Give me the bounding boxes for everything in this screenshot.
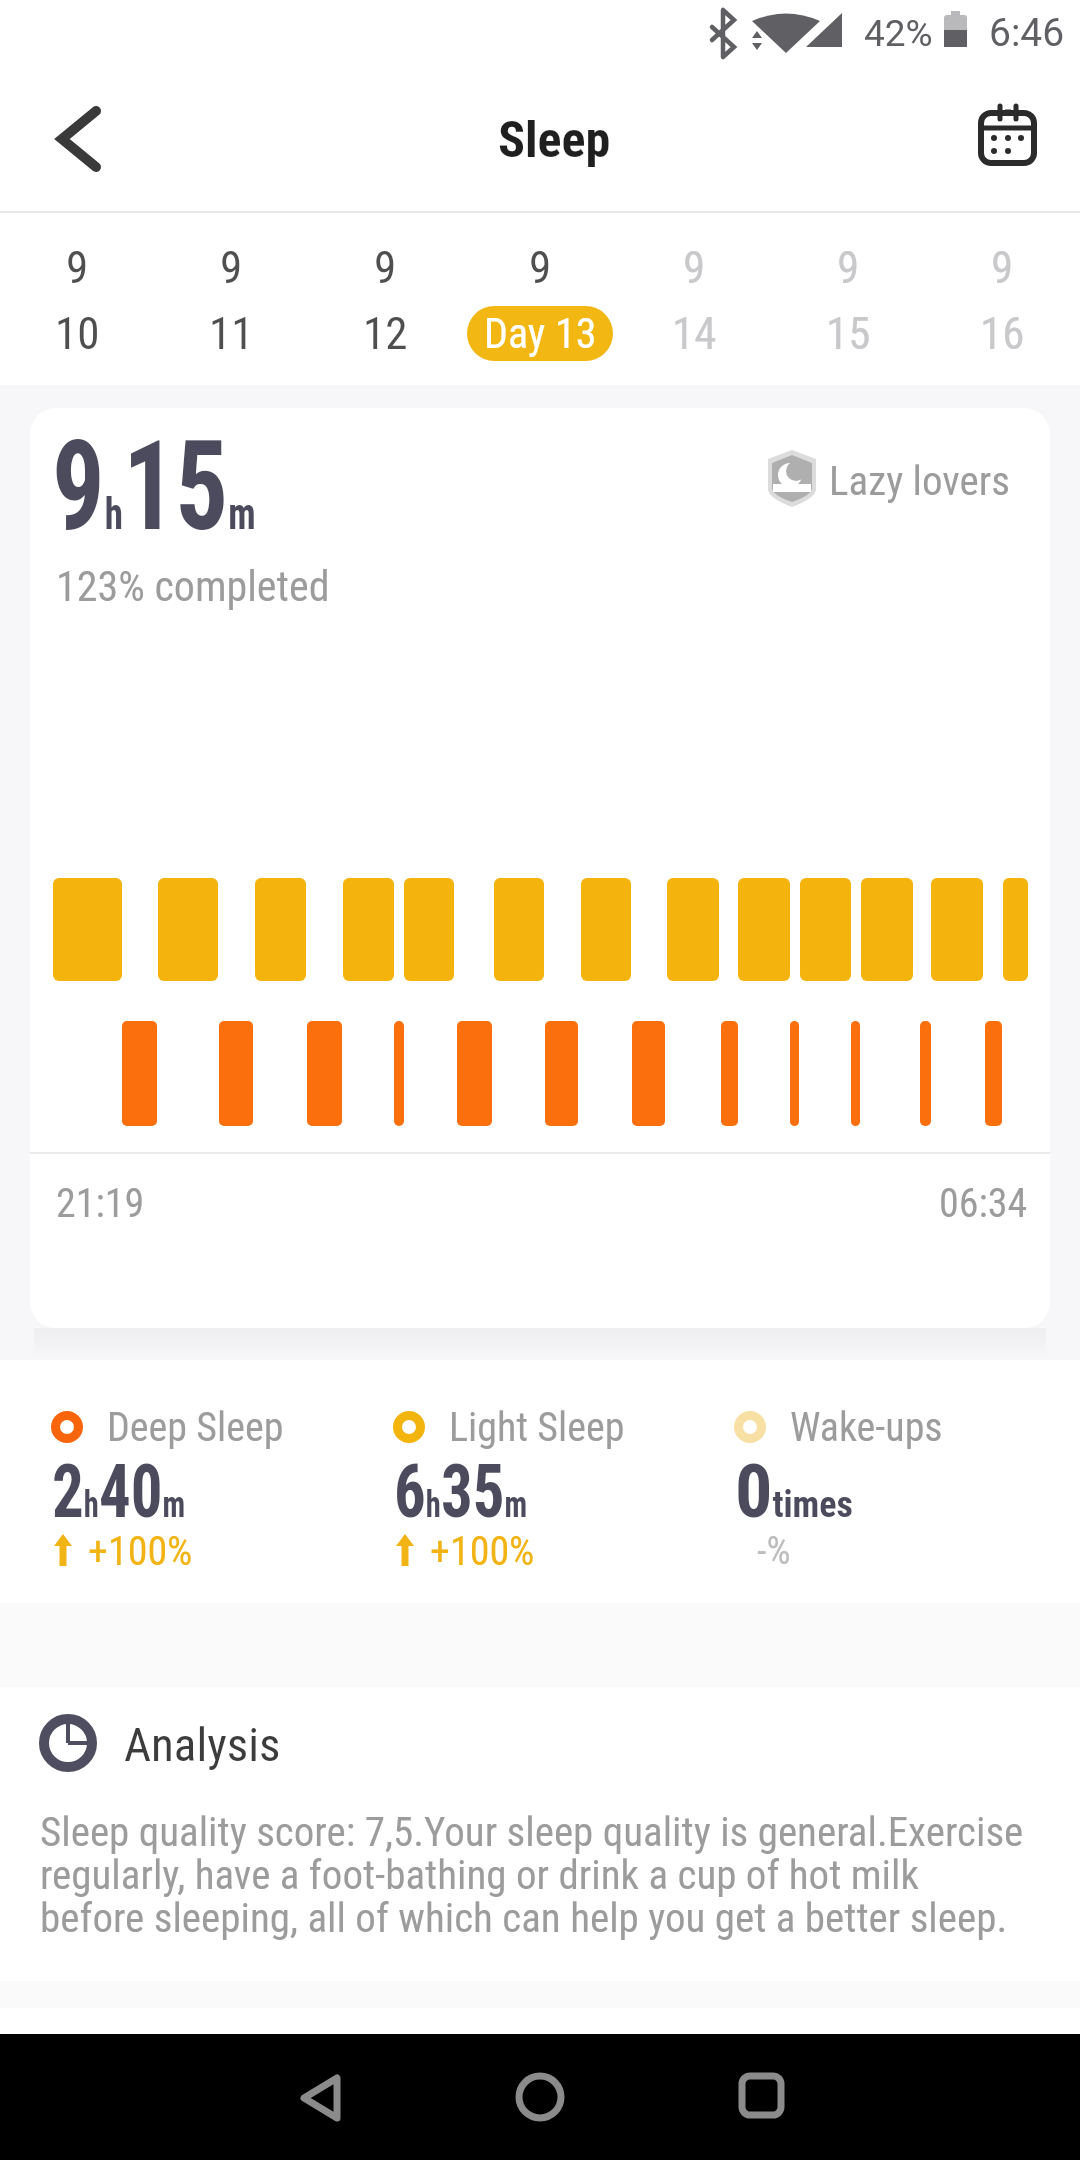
staticText: 16 [980,307,1025,360]
staticText: 10 [55,307,100,360]
staticText: 9h15m [52,414,256,559]
staticText: Deep Sleep [107,1404,284,1451]
staticText: 9 [529,241,552,294]
staticText: 6h35m [394,1448,527,1535]
button[interactable] [480,2040,600,2155]
staticText: 9 [683,241,706,294]
staticText: 9 [66,241,89,294]
button[interactable] [771,216,925,381]
staticText: +100% [430,1528,535,1575]
button[interactable] [154,216,308,381]
staticText: 9 [837,241,860,294]
button[interactable] [30,95,130,190]
staticText: +100% [88,1528,193,1575]
staticText: 9 [991,241,1014,294]
button[interactable] [700,2040,820,2155]
button[interactable] [960,90,1060,185]
button[interactable] [260,2040,380,2155]
staticText: 14 [672,307,717,360]
staticText: Day 13 [484,309,597,358]
staticText: 9 [374,241,397,294]
staticText: 2h40m [52,1448,185,1535]
staticText: 123% completed [56,562,330,611]
staticText: 6:46 [989,10,1065,56]
staticText: 06:34 [939,1180,1028,1227]
button[interactable] [308,216,462,381]
staticText: Sleep quality score: 7,5.Your sleep qual… [40,1808,1024,1942]
button[interactable] [0,216,154,381]
staticText: 11 [209,307,254,360]
staticText: 42% [864,12,933,55]
button[interactable] [617,216,771,381]
button[interactable] [463,216,617,381]
staticText: Analysis [124,1717,281,1772]
staticText: Sleep [498,111,611,170]
staticText: Wake-ups [790,1404,943,1451]
button[interactable] [925,216,1079,381]
staticText: Lazy lovers [829,457,1010,505]
staticText: 9 [220,241,243,294]
button[interactable]: Day 13 [467,306,613,361]
staticText: Light Sleep [449,1404,625,1451]
staticText: 21:19 [56,1180,145,1227]
staticText: -% [757,1529,791,1574]
staticText: 0times [735,1448,853,1535]
staticText: 15 [826,307,871,360]
staticText: 12 [363,307,408,360]
